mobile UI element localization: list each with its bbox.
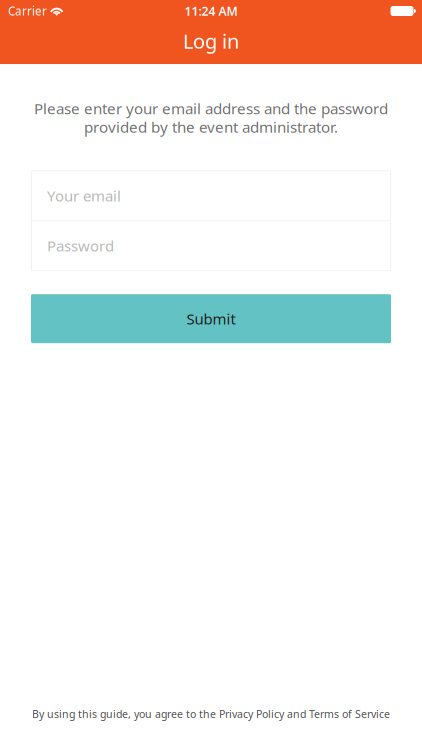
staticText: By using this guide, you agree to the Pr… xyxy=(32,707,390,721)
staticText: Log in xyxy=(183,27,239,55)
staticText: Carrier xyxy=(8,3,47,19)
staticText: Please enter your email address and the … xyxy=(34,98,388,119)
staticText: Password xyxy=(47,236,114,256)
button[interactable]: Password xyxy=(32,221,390,270)
button[interactable]: Your email xyxy=(32,171,390,220)
staticText: Submit xyxy=(186,309,235,329)
staticText: Your email xyxy=(47,186,121,206)
button[interactable]: Submit xyxy=(31,294,391,343)
staticText: 11:24 AM xyxy=(184,3,237,19)
staticText: provided by the event administrator. xyxy=(84,117,338,137)
